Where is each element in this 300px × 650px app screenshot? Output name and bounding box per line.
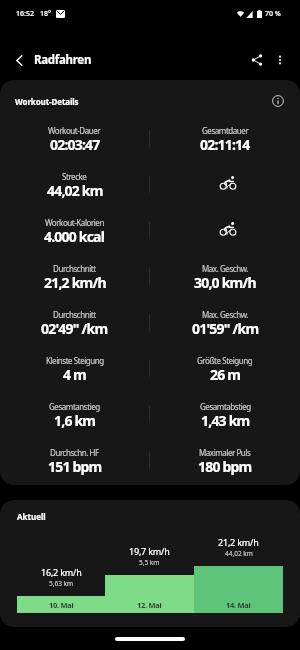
staticText: Max. Geschw. xyxy=(202,263,248,274)
staticText: 4 m xyxy=(63,365,86,384)
staticText: Maximaler Puls xyxy=(199,447,251,458)
staticText: Gesamtabstieg xyxy=(200,401,251,412)
staticText: 4.000 kcal xyxy=(44,227,105,246)
staticText: 16:52 xyxy=(16,9,34,19)
staticText: Workout-Dauer xyxy=(48,125,101,136)
button[interactable]: Share xyxy=(244,47,270,73)
staticText: 21,2 km/h xyxy=(44,273,106,292)
staticText: 180 bpm xyxy=(198,457,252,476)
staticText: 02:11:14 xyxy=(200,135,250,154)
button[interactable]: 14. Mai xyxy=(194,566,283,613)
staticText: Durchschn. HF xyxy=(50,447,99,458)
staticText: 5,63 km xyxy=(49,579,74,588)
staticText: 5,5 km xyxy=(139,558,160,567)
staticText: 19,7 km/h xyxy=(129,545,170,557)
staticText: 16,2 km/h xyxy=(41,566,82,578)
staticText: 70 % xyxy=(265,9,281,19)
staticText: Größte Steigung xyxy=(197,355,253,366)
staticText: Gesamtdauer xyxy=(202,125,249,136)
button[interactable]: 10. Mai xyxy=(17,596,105,613)
staticText: 14. Mai xyxy=(226,600,251,610)
staticText: 1,6 km xyxy=(54,411,96,430)
staticText: 12. Mai xyxy=(137,600,162,610)
staticText: Aktuell xyxy=(17,511,46,522)
staticText: Workout-Kalorien xyxy=(45,217,104,228)
staticText: Max. Geschw. xyxy=(202,309,248,320)
staticText: 44,02 km xyxy=(225,549,253,558)
staticText: 02:03:47 xyxy=(50,135,100,154)
staticText: 44,02 km xyxy=(47,181,103,200)
staticText: 01'59" /km xyxy=(192,319,259,338)
button[interactable]: 12. Mai xyxy=(105,575,194,613)
staticText: Workout-Details xyxy=(15,96,79,107)
staticText: 18° xyxy=(40,9,51,19)
staticText: 30,0 km/h xyxy=(194,273,256,292)
staticText: 02'49" /km xyxy=(41,319,108,338)
button[interactable]: Back xyxy=(0,41,38,79)
staticText: Durchschnitt xyxy=(53,263,96,274)
staticText: Gesamtanstieg xyxy=(49,401,100,412)
staticText: Radfahren xyxy=(34,52,92,68)
button[interactable]: More options xyxy=(269,49,291,71)
staticText: Kleinste Steigung xyxy=(46,355,104,366)
staticText: 26 m xyxy=(210,365,241,384)
staticText: 1,43 km xyxy=(201,411,250,430)
staticText: 151 bpm xyxy=(48,457,102,476)
staticText: Durchschnitt xyxy=(53,309,96,320)
button[interactable]: Info xyxy=(269,92,287,110)
staticText: 21,2 km/h xyxy=(218,536,259,548)
staticText: Strecke xyxy=(62,171,87,182)
staticText: 10. Mai xyxy=(49,600,74,610)
